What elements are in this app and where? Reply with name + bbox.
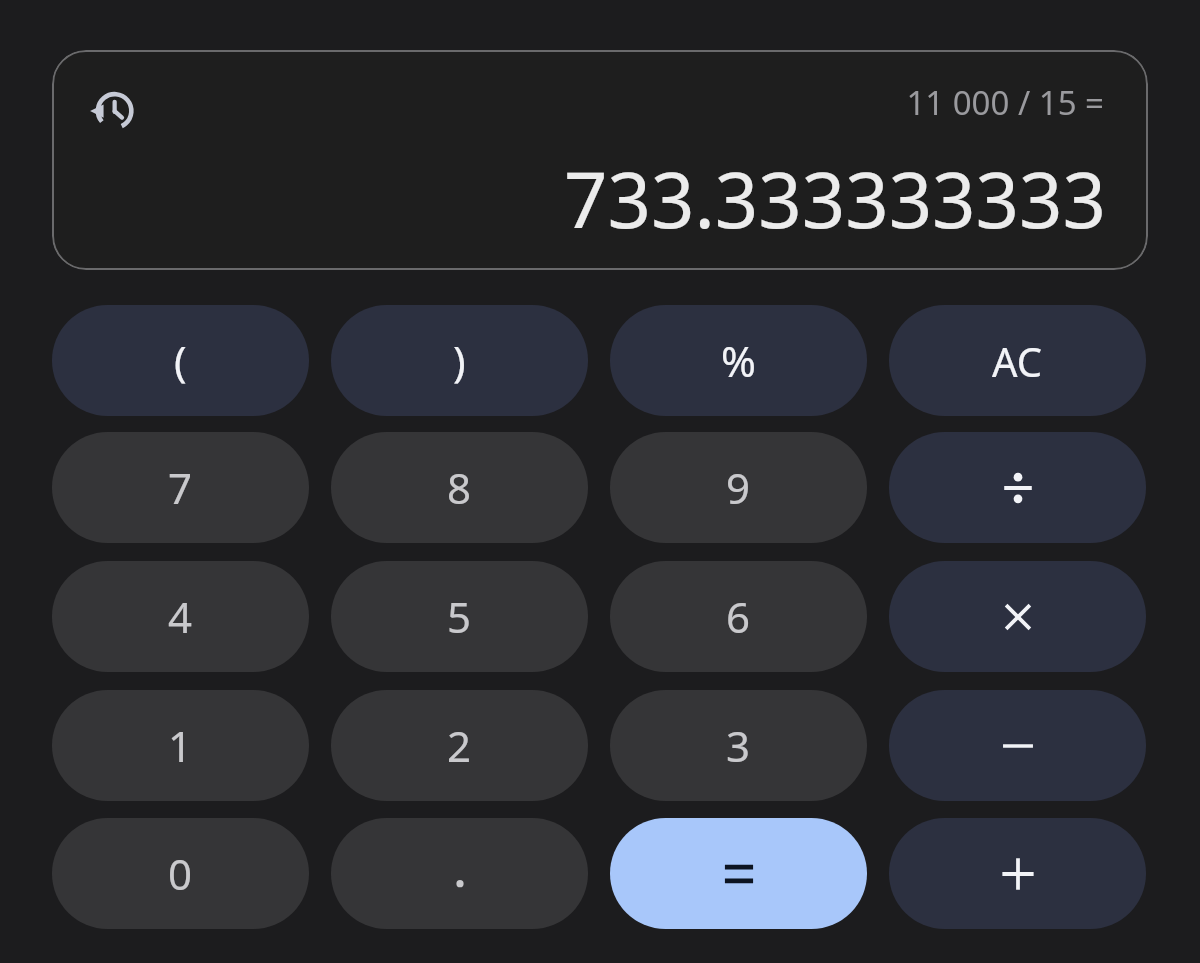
staticText: 9 [726, 459, 751, 516]
button[interactable]: % [610, 305, 867, 416]
staticText: 7 [168, 459, 193, 516]
staticText: ) [453, 332, 466, 389]
staticText: 2 [447, 717, 472, 774]
button[interactable]: AC [889, 305, 1146, 416]
button[interactable]: 2 [331, 690, 588, 801]
button[interactable]: 0 [52, 818, 309, 929]
button[interactable]: 6 [610, 561, 867, 672]
staticText: 11 000 / 15 = [906, 80, 1104, 125]
staticText: 733.333333333 [563, 147, 1106, 251]
staticText: 5 [447, 588, 472, 645]
staticText: 8 [447, 459, 472, 516]
button[interactable]: History [80, 78, 144, 142]
staticText: 1 [168, 717, 193, 774]
button[interactable]: 9 [610, 432, 867, 543]
staticText: ( [174, 332, 187, 389]
staticText: AC [992, 334, 1043, 388]
button[interactable]: Divide [889, 432, 1146, 543]
button[interactable]: ) [331, 305, 588, 416]
button[interactable]: 8 [331, 432, 588, 543]
button[interactable]: 1 [52, 690, 309, 801]
button[interactable]: Add [889, 818, 1146, 929]
staticText: 0 [168, 845, 193, 902]
button[interactable]: 4 [52, 561, 309, 672]
staticText: 6 [726, 588, 751, 645]
button[interactable]: 5 [331, 561, 588, 672]
staticText: 3 [726, 717, 751, 774]
staticText: % [721, 332, 756, 389]
staticText: 4 [168, 588, 193, 645]
button[interactable]: Multiply [889, 561, 1146, 672]
button[interactable]: Equals [610, 818, 867, 929]
button[interactable]: ( [52, 305, 309, 416]
button[interactable]: 7 [52, 432, 309, 543]
button[interactable]: Subtract [889, 690, 1146, 801]
button[interactable]: 3 [610, 690, 867, 801]
button[interactable]: Decimal point [331, 818, 588, 929]
